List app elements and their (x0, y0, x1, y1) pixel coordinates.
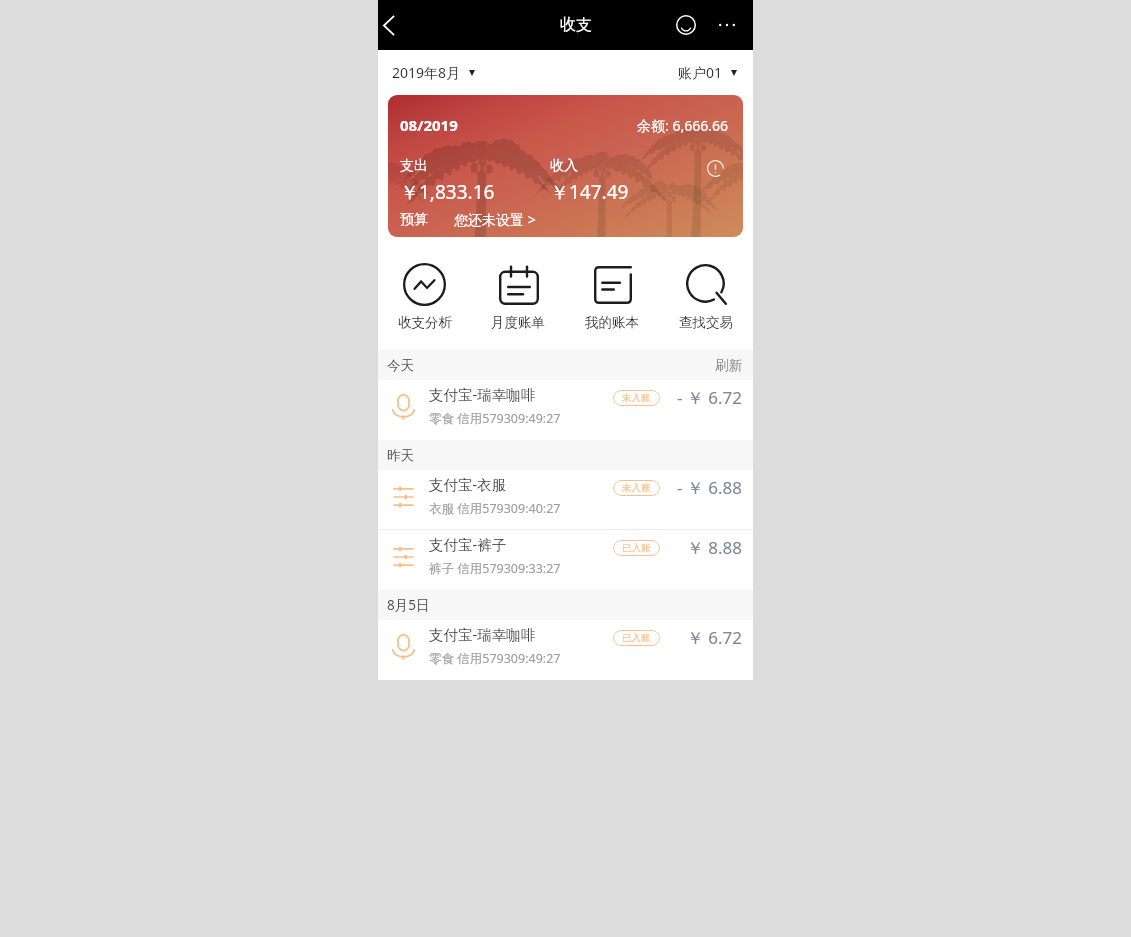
button[interactable]: 收支分析 (378, 263, 471, 331)
button[interactable]: 08/2019 (388, 95, 743, 237)
staticText: 月度账单 (491, 314, 545, 331)
staticText: 账户01 (678, 63, 723, 82)
staticText: 已入账 (622, 632, 651, 644)
staticText: 支付宝-衣服 (429, 474, 507, 494)
button[interactable]: 2019年8月 (392, 63, 475, 82)
staticText: 支付宝-瑞幸咖啡 (429, 624, 536, 644)
staticText: 刷新 (715, 357, 742, 374)
button[interactable]: 支付宝-衣服 (378, 470, 753, 530)
button[interactable]: More options (712, 10, 742, 40)
button[interactable]: Back (378, 14, 400, 36)
staticText: 余额: 6,666.66 (637, 116, 728, 135)
button[interactable]: 支付宝-裤子 (378, 530, 753, 590)
staticText: - ￥ 6.88 (672, 476, 742, 499)
staticText: 昨天 (387, 447, 414, 464)
staticText: ￥ 8.88 (672, 536, 742, 559)
button[interactable]: Profile (669, 8, 703, 42)
staticText: 2019年8月 (392, 63, 461, 82)
staticText: 未入账 (622, 482, 651, 494)
button[interactable]: 查找交易 (659, 263, 753, 331)
staticText: 收支分析 (398, 314, 452, 331)
staticText: 收支 (560, 15, 592, 35)
staticText: 支付宝-瑞幸咖啡 (429, 384, 536, 404)
staticText: 裤子 信用579309:33:27 (429, 560, 561, 577)
button[interactable]: 账户01 (678, 63, 737, 82)
staticText: 零食 信用579309:49:27 (429, 650, 561, 667)
staticText: 衣服 信用579309:40:27 (429, 500, 561, 517)
staticText: 查找交易 (679, 314, 733, 331)
button[interactable]: 月度账单 (471, 263, 565, 331)
staticText: ￥ 6.72 (672, 626, 742, 649)
staticText: ￥147.49 (550, 179, 629, 205)
staticText: 未入账 (622, 392, 651, 404)
staticText: 8月5日 (387, 596, 430, 614)
staticText: 今天 (387, 357, 414, 374)
staticText: 08/2019 (400, 115, 458, 135)
staticText: 支付宝-裤子 (429, 534, 507, 554)
button[interactable]: 您还未设置 > (454, 210, 536, 229)
staticText: 预算 (400, 211, 428, 229)
staticText: ￥1,833.16 (400, 179, 495, 205)
staticText: 您还未设置 > (454, 210, 536, 229)
button[interactable]: 支付宝-瑞幸咖啡 (378, 380, 753, 440)
button[interactable]: 支付宝-瑞幸咖啡 (378, 620, 753, 680)
button[interactable]: 我的账本 (565, 263, 659, 331)
staticText: 收入 (550, 157, 578, 175)
staticText: - ￥ 6.72 (672, 386, 742, 409)
button[interactable]: Info (707, 160, 724, 177)
staticText: 支出 (400, 157, 428, 175)
button[interactable]: 刷新 (715, 357, 742, 374)
staticText: 零食 信用579309:49:27 (429, 410, 561, 427)
staticText: 我的账本 (585, 314, 639, 331)
staticText: 已入账 (622, 542, 651, 554)
